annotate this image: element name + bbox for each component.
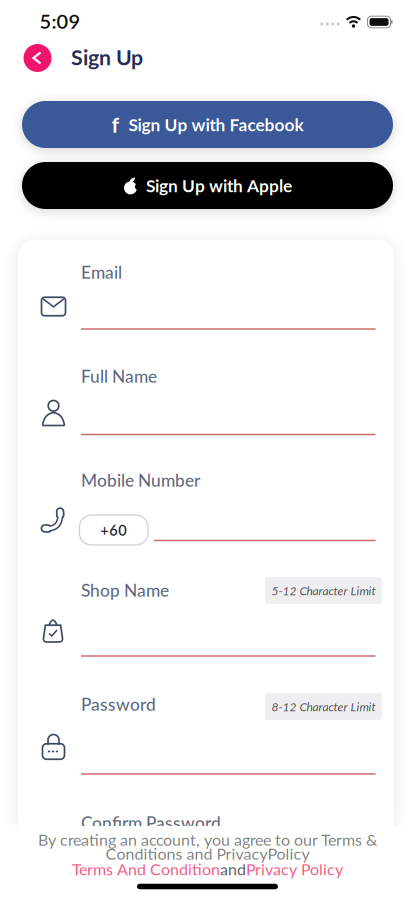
staticText: Mobile Number (81, 470, 200, 490)
staticText: Sign Up (71, 44, 143, 69)
staticText: 5-12 Character Limit (271, 583, 375, 597)
staticText: and (220, 860, 246, 878)
staticText: Sign Up with Apple (146, 175, 292, 196)
staticText: 5:09 (39, 9, 80, 33)
staticText: Conditions and PrivacyPolicy (105, 844, 309, 863)
button[interactable]: Terms And Condition (72, 860, 220, 878)
staticText: 8-12 Character Limit (271, 699, 375, 713)
staticText: Password (81, 694, 156, 714)
staticText: Shop Name (81, 580, 169, 600)
staticText: Email (81, 262, 122, 282)
button[interactable]: Country code +60 (79, 515, 148, 545)
button[interactable]: Privacy Policy (246, 860, 343, 878)
staticText: Confirm Password (81, 812, 221, 833)
staticText: Terms And Condition (72, 860, 220, 878)
staticText: Privacy Policy (246, 860, 343, 878)
button[interactable]: f (22, 101, 393, 148)
staticText: +60 (100, 521, 127, 539)
staticText: By creating an account, you agree to our… (38, 830, 377, 849)
button[interactable]: Back (23, 44, 51, 72)
staticText: f (111, 112, 119, 137)
staticText: Full Name (81, 366, 157, 386)
staticText: Sign Up with Facebook (128, 114, 303, 135)
button[interactable]: Sign Up with Apple (22, 162, 393, 209)
